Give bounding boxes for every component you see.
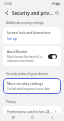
- staticText: Permissions used in last 24 hours: [7, 109, 54, 113]
- staticText: Control what happens to your data: [7, 87, 50, 91]
- staticText: Set up: [7, 37, 17, 41]
- button[interactable]: Auto Blocker: [3, 46, 61, 66]
- staticText: Auto Blocker: [7, 49, 28, 54]
- staticText: More security settings: [7, 81, 44, 86]
- button[interactable]: Permissions used in last 24 hours: [3, 106, 61, 113]
- button[interactable]: Home: [25, 114, 39, 121]
- button[interactable]: Screen lock and biometrics: [3, 27, 61, 44]
- button[interactable]: Back: [45, 114, 59, 121]
- staticText: Security status of your devices: [6, 72, 48, 76]
- button[interactable]: Recents: [6, 114, 20, 121]
- staticText: Screen lock and biometrics: [7, 30, 51, 35]
- staticText: Privacy: [6, 100, 16, 104]
- staticText: 12:30: [4, 2, 12, 6]
- button[interactable]: Auto Blocker toggle: [48, 54, 57, 59]
- button[interactable]: More security settings: [3, 78, 61, 94]
- button[interactable]: Back: [3, 9, 11, 17]
- staticText: Additional security settings: [6, 21, 44, 25]
- button[interactable]: Search: [53, 9, 61, 17]
- staticText: Block threats like harmful apps and: [7, 55, 45, 59]
- staticText: malicious commands: [7, 59, 34, 63]
- staticText: Security and privacy: [12, 10, 53, 16]
